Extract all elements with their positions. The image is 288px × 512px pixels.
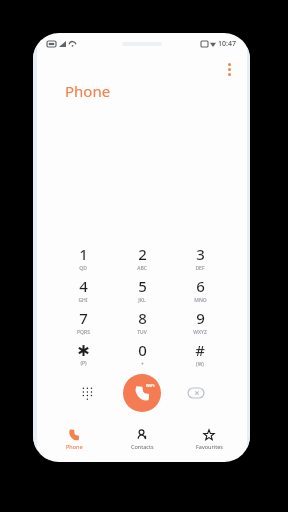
staticText: Phone [65, 81, 111, 101]
staticText: ABC [137, 265, 147, 272]
button[interactable]: 6 [174, 274, 226, 306]
staticText: 2 [138, 244, 147, 264]
staticText: Favourites [196, 443, 223, 450]
button[interactable]: More options [220, 63, 238, 81]
staticText: # [195, 340, 205, 360]
button[interactable]: ✱ [57, 338, 109, 370]
staticText: Phone [66, 443, 83, 450]
staticText: 8 [138, 308, 147, 328]
button[interactable]: Call [123, 374, 161, 412]
button[interactable]: 2 [116, 242, 168, 274]
button[interactable]: # [174, 338, 226, 370]
staticText: 4 [79, 276, 88, 296]
staticText: 7 [79, 308, 88, 328]
staticText: ✱ [77, 342, 90, 359]
button[interactable]: 7 [57, 306, 109, 338]
staticText: Contacts [131, 443, 154, 450]
staticText: MNO [194, 297, 207, 304]
staticText: WiFi [146, 383, 155, 388]
button[interactable]: 0 [116, 338, 168, 370]
staticText: 0 [138, 340, 147, 360]
staticText: + [141, 361, 144, 368]
button[interactable]: 1 [57, 242, 109, 274]
staticText: 1 [79, 244, 88, 264]
staticText: QD [79, 265, 87, 272]
button[interactable]: Dialpad [67, 373, 107, 413]
staticText: WXYZ [193, 329, 207, 336]
button[interactable]: 9 [174, 306, 226, 338]
button[interactable]: Phone [42, 424, 106, 454]
staticText: 6 [196, 276, 205, 296]
button[interactable]: 8 [116, 306, 168, 338]
staticText: 5 [138, 276, 147, 296]
staticText: (P) [80, 360, 87, 367]
button[interactable]: Contacts [110, 424, 174, 454]
staticText: DEF [195, 265, 205, 272]
button[interactable]: Favourites [177, 424, 241, 454]
button[interactable]: 3 [174, 242, 226, 274]
staticText: 10:47 [218, 39, 236, 49]
staticText: PQRS [77, 329, 90, 336]
staticText: JKL [138, 297, 146, 304]
staticText: 9 [196, 308, 205, 328]
button[interactable]: 4 [57, 274, 109, 306]
staticText: 3 [196, 244, 205, 264]
button[interactable]: 5 [116, 274, 168, 306]
staticText: GHI [78, 297, 88, 304]
staticText: (W) [196, 361, 204, 368]
button[interactable]: Backspace [176, 373, 216, 413]
staticText: TUV [137, 329, 147, 336]
